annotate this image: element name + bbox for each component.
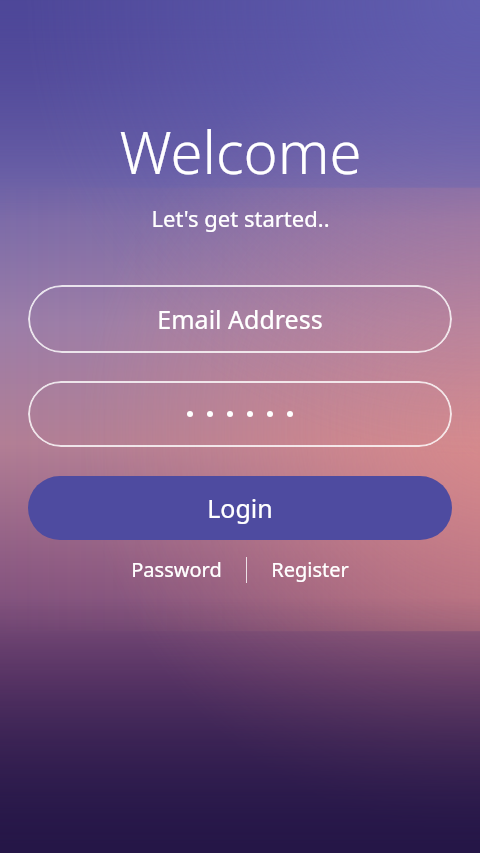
button[interactable]: Password: [28, 381, 452, 447]
staticText: Let's get started..: [151, 203, 330, 233]
button[interactable]: Password: [125, 552, 228, 587]
staticText: Login: [207, 491, 273, 525]
staticText: Register: [271, 556, 349, 583]
staticText: Welcome: [119, 112, 362, 191]
button[interactable]: Login: [28, 476, 452, 540]
button[interactable]: Register: [265, 552, 355, 587]
button[interactable]: Email Address: [28, 285, 452, 353]
staticText: Email Address: [157, 302, 323, 336]
staticText: Password: [131, 556, 222, 583]
